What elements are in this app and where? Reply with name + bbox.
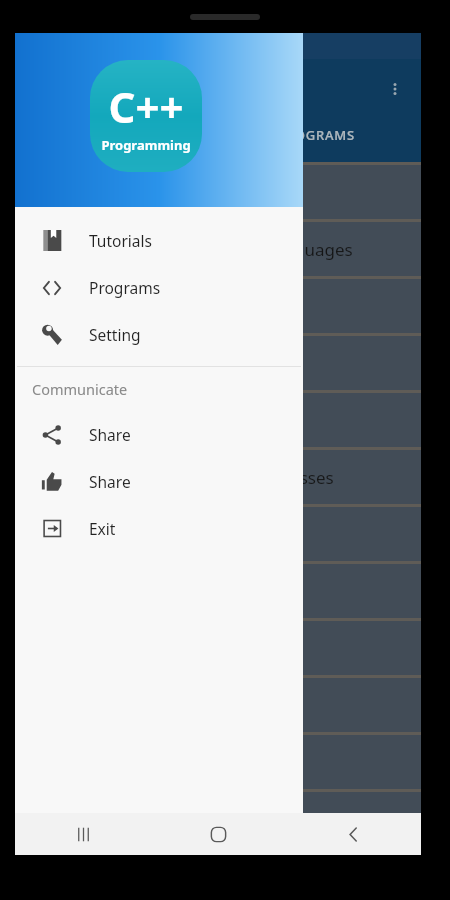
staticText: Classes (275, 466, 334, 489)
staticText: Languages (265, 238, 353, 261)
staticText: Communicate (32, 379, 128, 399)
staticText: Share (89, 424, 131, 445)
button[interactable] (15, 621, 421, 675)
button[interactable] (15, 735, 421, 789)
staticText: Setting (89, 324, 141, 345)
staticText: Tutorials (89, 230, 152, 251)
button[interactable]: Share (15, 458, 303, 505)
staticText: PROGRAMS (277, 126, 356, 144)
staticText: C++ (108, 78, 184, 135)
button[interactable]: Tutorials (15, 217, 303, 264)
button[interactable] (15, 165, 421, 219)
button[interactable]: Classes (15, 450, 421, 504)
button[interactable]: Setting (15, 311, 303, 358)
staticText: Programming (101, 136, 191, 154)
button[interactable]: Back (286, 813, 421, 855)
staticText: Share (89, 471, 131, 492)
button[interactable] (15, 279, 421, 333)
button[interactable]: More options (377, 71, 413, 107)
button[interactable]: Programs (15, 264, 303, 311)
button[interactable]: Share (15, 411, 303, 458)
staticText: Exit (89, 518, 116, 539)
button[interactable]: Home (151, 813, 286, 855)
button[interactable]: Exit (15, 505, 303, 552)
button[interactable] (15, 564, 421, 618)
button[interactable] (15, 507, 421, 561)
button[interactable]: Recents (15, 813, 151, 855)
button[interactable]: Languages (15, 222, 421, 276)
button[interactable] (15, 393, 421, 447)
button[interactable] (15, 336, 421, 390)
button[interactable] (15, 678, 421, 732)
staticText: Programs (89, 277, 161, 298)
button[interactable] (15, 792, 421, 846)
